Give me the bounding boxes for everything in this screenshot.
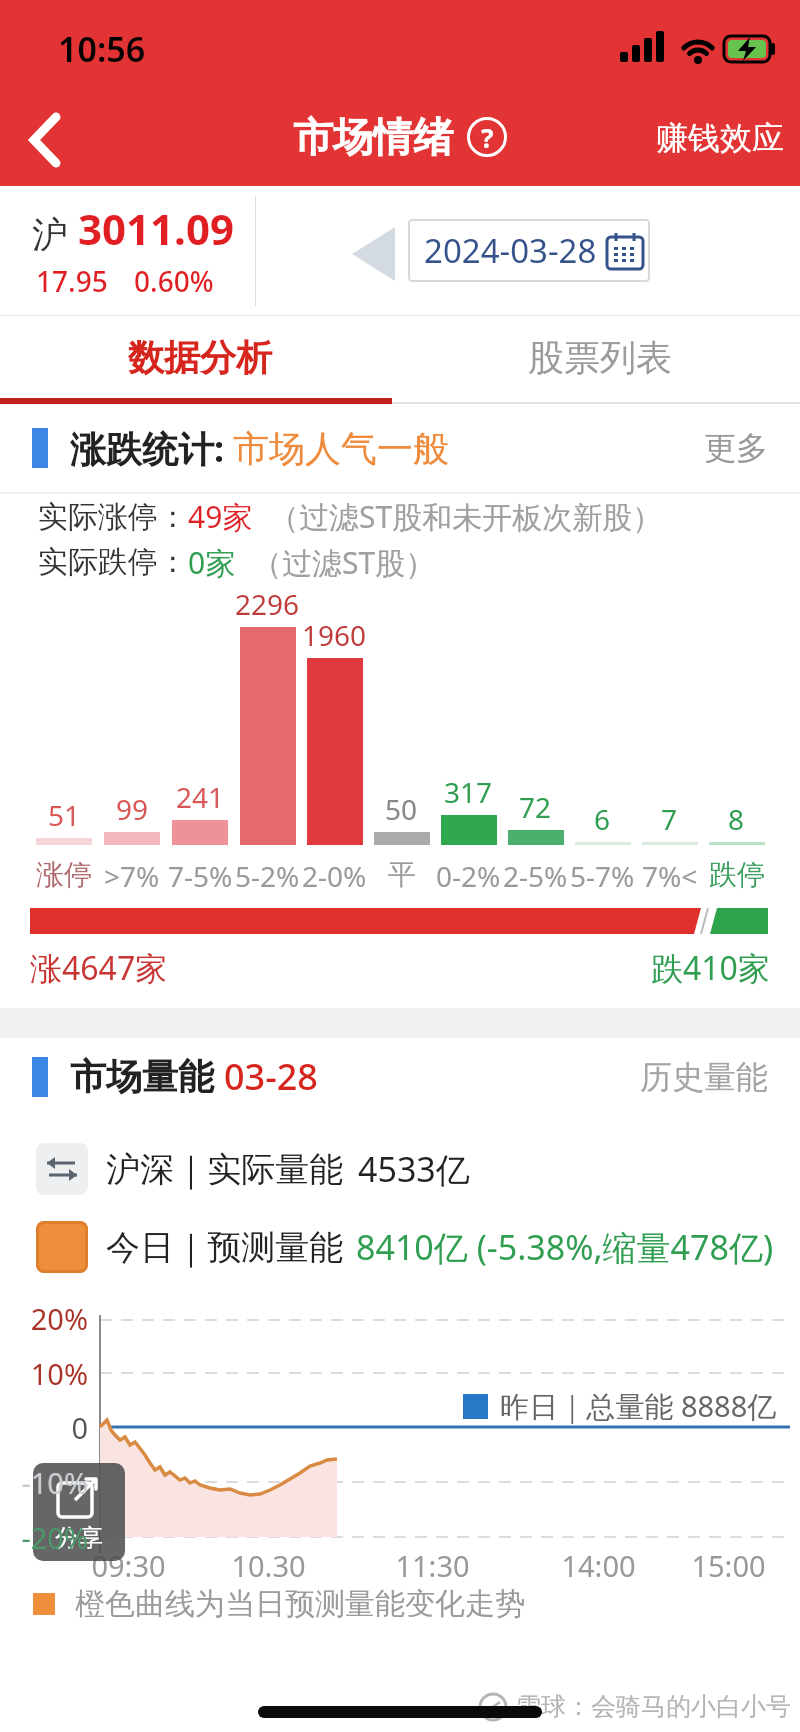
staticText: 6	[594, 800, 611, 838]
staticText: 3011.09	[78, 200, 234, 257]
staticText: 03-28	[224, 1052, 318, 1101]
button[interactable]: 更多	[704, 428, 768, 468]
staticText: 涨停	[36, 857, 92, 890]
staticText: 17.95	[36, 262, 108, 300]
staticText: 今日｜预测量能	[106, 1226, 344, 1269]
staticText: 数据分析	[128, 335, 272, 380]
staticText: 0-2%	[436, 857, 501, 890]
staticText: 橙色曲线为当日预测量能变化走势	[75, 1585, 525, 1623]
staticText: 跌停	[709, 857, 765, 890]
staticText: 昨日｜总量能 8888亿	[500, 1386, 777, 1426]
staticText: 49家	[188, 496, 253, 537]
staticText: 2024-03-28	[424, 228, 597, 273]
staticText: 5-2%	[235, 857, 300, 890]
staticText: 8410亿 (-5.38%,缩量478亿)	[356, 1224, 774, 1270]
staticText: 7	[661, 800, 678, 838]
staticText: -10%	[21, 1463, 88, 1502]
staticText: 2296	[235, 585, 300, 623]
staticText: 分享	[55, 1523, 103, 1553]
button[interactable]: 2024-03-28	[408, 219, 650, 282]
staticText: 2-0%	[302, 857, 367, 890]
staticText: -20%	[21, 1518, 88, 1557]
staticText: 11:30	[395, 1546, 470, 1585]
staticText: 241	[176, 778, 225, 816]
staticText: 50	[385, 790, 418, 828]
staticText: 0家	[188, 542, 236, 583]
staticText: 1960	[302, 616, 367, 654]
staticText: 涨跌统计:	[70, 424, 225, 473]
staticText: 51	[48, 796, 81, 834]
button[interactable]: 股票列表	[400, 316, 800, 398]
button[interactable]	[30, 115, 60, 165]
staticText: 跌410家	[651, 946, 770, 990]
staticText: 8	[728, 800, 745, 838]
button[interactable]: 历史量能	[640, 1057, 768, 1097]
staticText: （过滤ST股）	[252, 542, 436, 583]
button[interactable]: 分享	[33, 1463, 125, 1561]
staticText: 雪球：会骑马的小白小号	[516, 1691, 791, 1722]
staticText: 0	[71, 1408, 88, 1447]
staticText: 沪深｜实际量能	[106, 1148, 344, 1191]
staticText: 7-5%	[168, 857, 233, 890]
staticText: ?	[481, 120, 494, 155]
staticText: 2-5%	[503, 857, 568, 890]
staticText: 15:00	[691, 1546, 766, 1585]
staticText: 沪	[32, 212, 68, 257]
staticText: 99	[116, 790, 149, 828]
button[interactable]	[352, 227, 395, 281]
staticText: 实际跌停：	[38, 543, 188, 581]
button[interactable]: 赚钱效应	[656, 118, 784, 158]
staticText: 4533亿	[358, 1146, 470, 1192]
staticText: 实际涨停：	[38, 498, 188, 536]
staticText: （过滤ST股和未开板次新股）	[269, 496, 663, 537]
staticText: 14:00	[561, 1546, 636, 1585]
staticText: 72	[519, 788, 552, 826]
staticText: 09:30	[91, 1546, 166, 1585]
staticText: 10%	[30, 1354, 88, 1393]
staticText: 涨4647家	[30, 946, 168, 990]
staticText: 20%	[30, 1299, 88, 1338]
staticText: 市场量能	[70, 1054, 214, 1099]
staticText: >7%	[104, 857, 160, 890]
staticText: 市场情绪	[293, 112, 453, 162]
button[interactable]: ?	[467, 117, 507, 157]
staticText: 平	[388, 857, 416, 890]
staticText: 市场人气一般	[233, 426, 449, 471]
staticText: 10:56	[58, 26, 146, 72]
staticText: 7%<	[642, 857, 698, 890]
staticText: 0.60%	[134, 262, 214, 300]
staticText: 股票列表	[528, 335, 672, 380]
button[interactable]: 数据分析	[0, 316, 400, 398]
staticText: 10.30	[231, 1546, 306, 1585]
staticText: 5-7%	[570, 857, 635, 890]
staticText: 317	[444, 773, 493, 811]
